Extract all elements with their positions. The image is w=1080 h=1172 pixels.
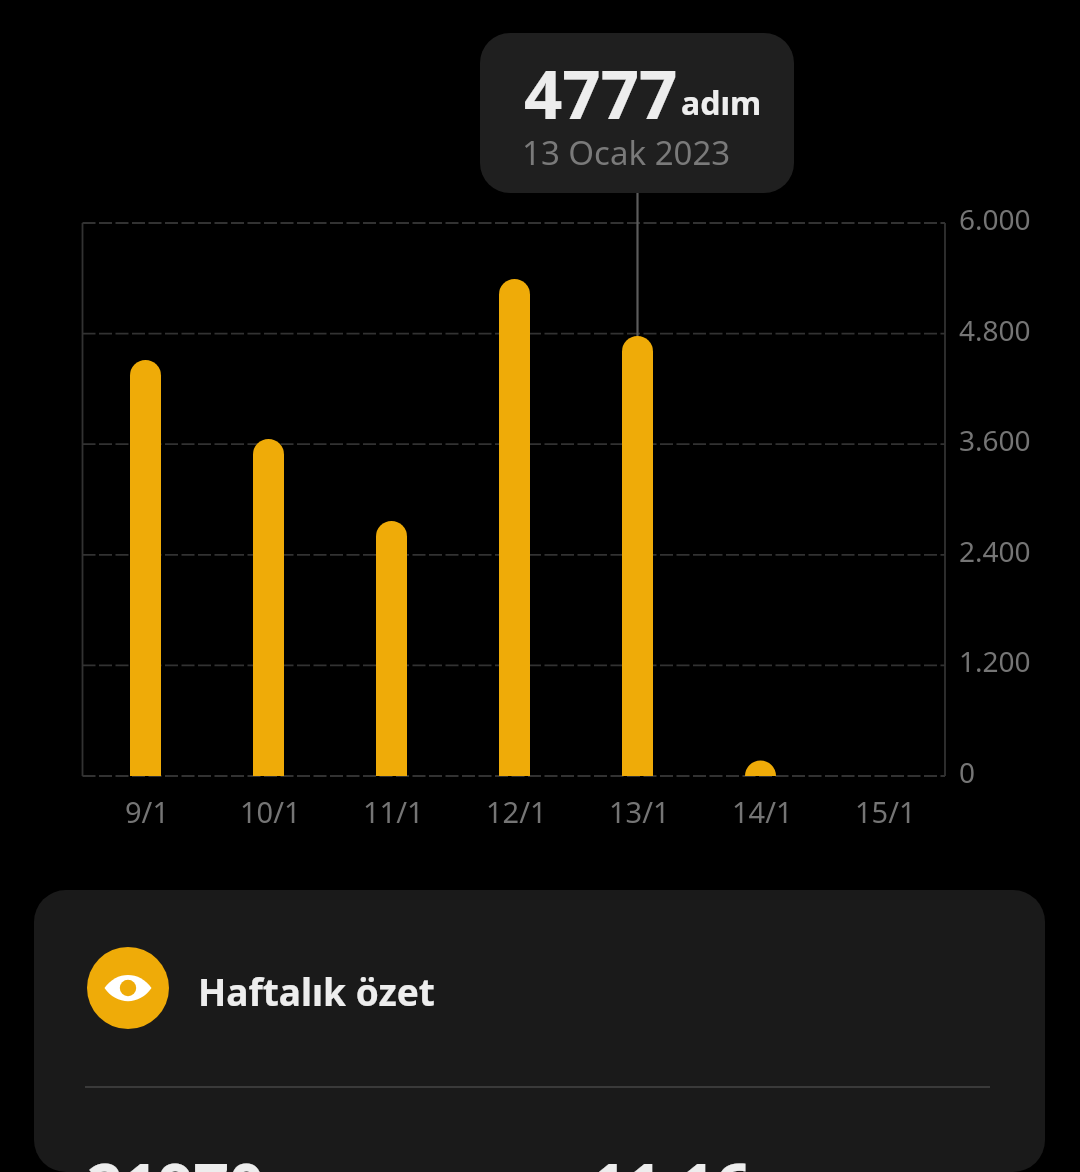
other: Weekly summary: [87, 947, 169, 1029]
staticText: 21970: [87, 1143, 265, 1172]
staticText: 6.000: [959, 200, 1031, 238]
staticText: 9/1: [125, 792, 169, 831]
staticText: 11/1: [363, 792, 424, 831]
staticText: 11,16: [591, 1143, 751, 1172]
staticText: 13 Ocak 2023: [522, 130, 731, 175]
staticText: 4777: [524, 47, 678, 138]
staticText: 15/1: [855, 792, 916, 831]
button[interactable]: 9/1: [84, 223, 207, 776]
button[interactable]: 15/1: [822, 223, 945, 776]
staticText: 2.400: [959, 532, 1031, 570]
staticText: 10/1: [240, 792, 301, 831]
button[interactable]: 11/1: [330, 223, 453, 776]
staticText: 1.200: [959, 642, 1031, 680]
staticText: Haftalık özet: [198, 966, 435, 1016]
button[interactable]: 4777: [480, 33, 794, 193]
staticText: 4.800: [959, 311, 1031, 349]
staticText: 3.600: [959, 421, 1031, 459]
button[interactable]: 10/1: [207, 223, 330, 776]
button[interactable]: 13/1: [576, 223, 699, 776]
button[interactable]: 12/1: [453, 223, 576, 776]
staticText: 12/1: [486, 792, 547, 831]
staticText: 0: [959, 753, 976, 791]
staticText: 14/1: [732, 792, 793, 831]
button[interactable]: Weekly summary: [34, 890, 1045, 1086]
button[interactable]: 14/1: [699, 223, 822, 776]
staticText: adım: [681, 81, 762, 125]
staticText: 13/1: [609, 792, 670, 831]
